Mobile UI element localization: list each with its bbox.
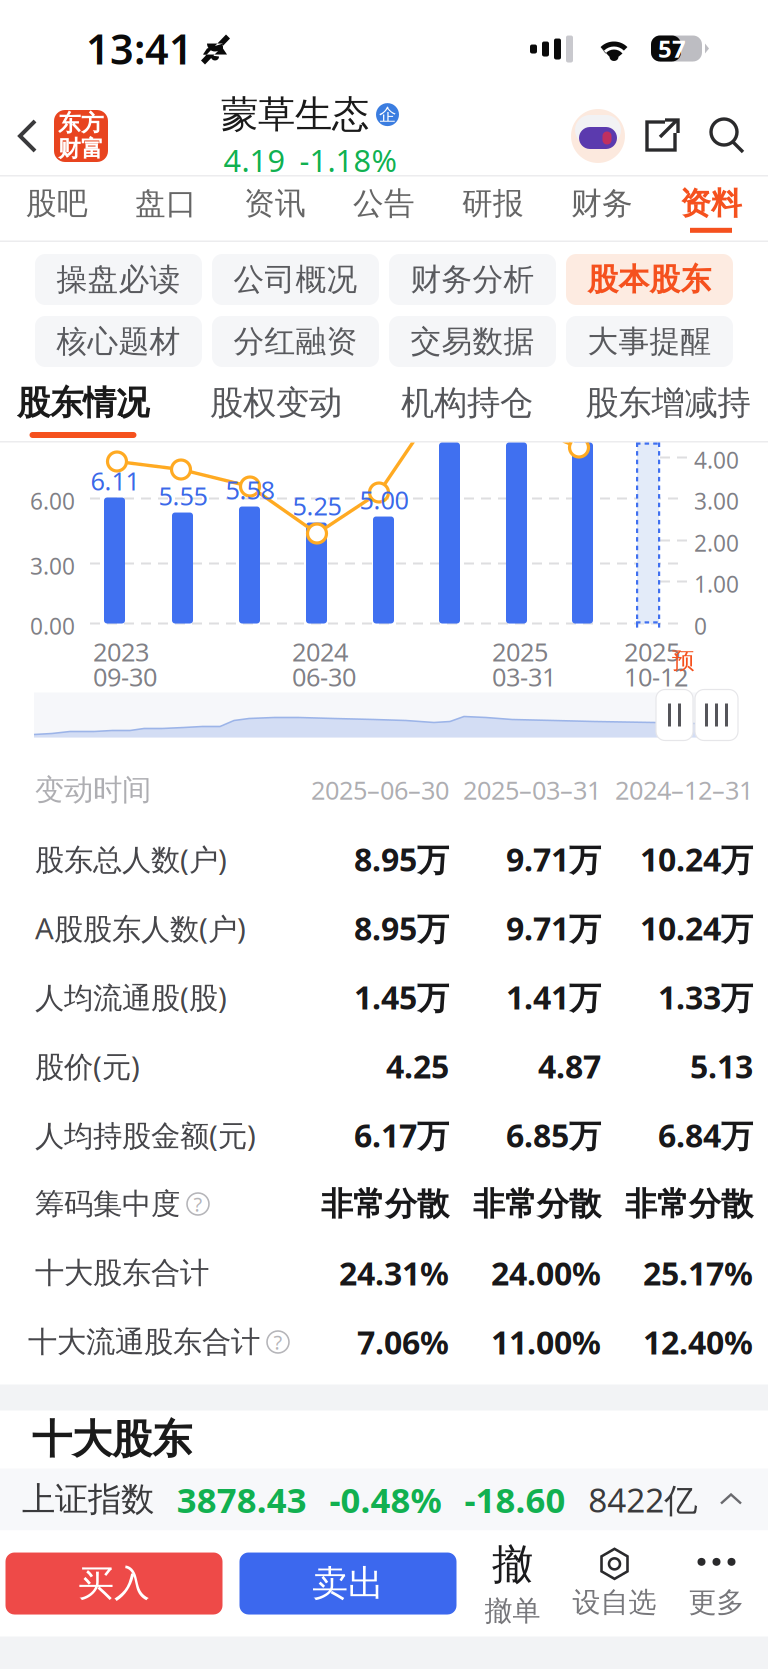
staticText: 0 xyxy=(694,610,707,641)
button[interactable]: 更多 xyxy=(668,1547,764,1620)
staticText: 2025–03–31 xyxy=(463,773,601,807)
staticText: 25.17% xyxy=(643,1251,753,1295)
staticText: 买入 xyxy=(78,1561,150,1606)
staticText: 2024–12–31 xyxy=(615,773,753,807)
staticText: 6.11 xyxy=(90,463,139,498)
staticText: 股权变动 xyxy=(210,382,342,424)
button[interactable]: 返回 xyxy=(0,107,54,165)
staticText: 十大股东合计 xyxy=(35,1254,209,1291)
staticText: 股价(元) xyxy=(35,1046,140,1086)
button[interactable]: 区间手柄 xyxy=(656,689,693,740)
staticText: 蒙草生态 xyxy=(221,91,369,138)
button[interactable]: 核心题材 xyxy=(35,316,202,367)
staticText: ? xyxy=(273,1328,282,1356)
button[interactable]: 公告 xyxy=(329,176,438,240)
button[interactable]: 股吧 xyxy=(2,176,111,240)
button[interactable]: 大事提醒 xyxy=(566,316,733,367)
button[interactable]: 交易数据 xyxy=(389,316,556,367)
staticText: 11.00% xyxy=(491,1320,601,1364)
staticText: 7.06% xyxy=(357,1320,449,1364)
staticText: 筹码集中度 xyxy=(35,1185,180,1222)
button[interactable]: 财务分析 xyxy=(389,254,556,305)
staticText: 2025 xyxy=(492,634,548,669)
staticText: 4.19 xyxy=(223,139,285,181)
staticText: 10.24万 xyxy=(640,906,753,950)
staticText: 交易数据 xyxy=(410,322,534,361)
staticText: 股东情况 xyxy=(17,382,149,424)
button[interactable]: 上证指数 xyxy=(0,1468,768,1530)
button[interactable]: 设自选 xyxy=(560,1547,668,1620)
staticText: 03-31 xyxy=(492,659,556,694)
staticText: 2024 xyxy=(292,634,348,669)
staticText: 人均持股金额(元) xyxy=(35,1115,256,1155)
staticText: 4.87 xyxy=(538,1044,601,1088)
button[interactable]: 股东增减持 xyxy=(578,379,758,441)
staticText: 大事提醒 xyxy=(587,322,711,361)
staticText: 3878.43 xyxy=(177,1476,307,1523)
staticText: 2.00 xyxy=(694,527,739,558)
button[interactable]: 操盘必读 xyxy=(35,254,202,305)
button[interactable]: 研报 xyxy=(438,176,547,240)
staticText: 8.95万 xyxy=(354,837,449,881)
staticText: 上证指数 xyxy=(22,1478,154,1520)
button[interactable]: 资料 xyxy=(656,176,765,240)
button[interactable]: 搜索 xyxy=(696,107,758,165)
staticText: 十大流通股东合计 xyxy=(28,1323,260,1360)
button[interactable]: 盘口 xyxy=(111,176,220,240)
staticText: 机构持仓 xyxy=(401,382,533,424)
staticText: 3.00 xyxy=(30,550,75,581)
staticText: 盘口 xyxy=(135,184,197,223)
button[interactable]: 股权变动 xyxy=(186,379,366,441)
staticText: 设自选 xyxy=(572,1585,656,1620)
staticText: 2025 xyxy=(624,634,680,669)
staticText: -0.48% xyxy=(330,1476,442,1523)
staticText: 24.00% xyxy=(491,1251,601,1295)
staticText: 1.45万 xyxy=(354,975,449,1019)
button[interactable]: 公司概况 xyxy=(212,254,379,305)
button[interactable]: 股东情况 xyxy=(0,379,173,441)
staticText: 1.33万 xyxy=(658,975,753,1019)
staticText: 4.25 xyxy=(386,1044,449,1088)
staticText: 人均流通股(股) xyxy=(35,977,227,1017)
staticText: 12.40% xyxy=(643,1320,753,1364)
staticText: 卖出 xyxy=(312,1561,384,1606)
button[interactable]: 卖出 xyxy=(239,1552,456,1614)
staticText: 9.71万 xyxy=(506,906,601,950)
staticText: 股东增减持 xyxy=(585,382,750,424)
staticText: 公司概况 xyxy=(233,260,357,299)
staticText: 更多 xyxy=(688,1585,744,1620)
button[interactable]: 分享 xyxy=(630,107,696,165)
button[interactable]: 撤 xyxy=(464,1538,560,1629)
staticText: 0.00 xyxy=(30,610,75,641)
staticText: 非常分散 xyxy=(625,1184,753,1224)
staticText: -18.60 xyxy=(464,1476,565,1523)
staticText: 5.58 xyxy=(225,472,274,507)
staticText: 资讯 xyxy=(244,184,306,223)
staticText: 06-30 xyxy=(292,659,356,694)
button[interactable]: 机构持仓 xyxy=(377,379,557,441)
staticText: 5.00 xyxy=(359,482,408,517)
staticText: 研报 xyxy=(462,184,524,223)
staticText: 财务 xyxy=(571,184,633,223)
staticText: 预 xyxy=(672,646,695,675)
button[interactable]: 东方财富 xyxy=(54,110,108,162)
staticText: 分红融资 xyxy=(233,322,357,361)
staticText: 5.55 xyxy=(158,478,207,513)
button[interactable]: 财务 xyxy=(547,176,656,240)
button[interactable]: 资讯 xyxy=(220,176,329,240)
button[interactable]: 区间手柄 xyxy=(695,689,738,740)
button[interactable]: 买入 xyxy=(5,1552,222,1614)
staticText: A股股东人数(户) xyxy=(35,908,246,948)
staticText: 10.24万 xyxy=(640,837,753,881)
button[interactable]: 分红融资 xyxy=(212,316,379,367)
staticText: 东方 xyxy=(58,109,104,137)
staticText: 企 xyxy=(379,104,396,125)
button[interactable]: AI 助手 xyxy=(566,108,630,164)
staticText: 股本股东 xyxy=(587,260,711,299)
staticText: 57 xyxy=(658,32,686,65)
staticText: 2023 xyxy=(93,634,149,669)
staticText: 1.41万 xyxy=(506,975,601,1019)
button[interactable]: 股本股东 xyxy=(566,254,733,305)
staticText: 6.17万 xyxy=(354,1113,449,1157)
staticText: 财富 xyxy=(58,134,104,163)
